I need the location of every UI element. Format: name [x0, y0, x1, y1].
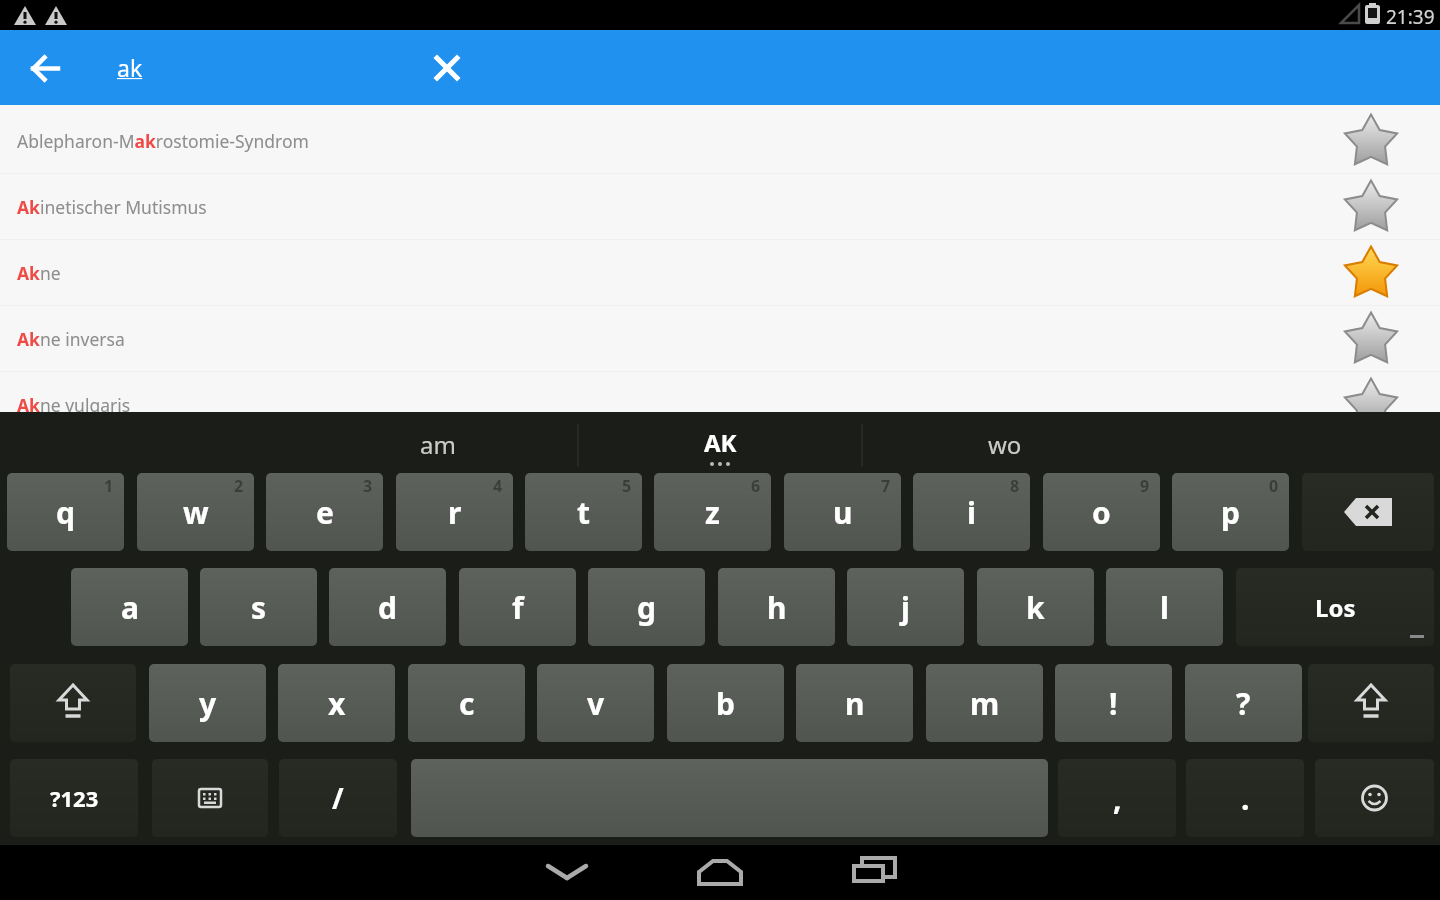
button[interactable]: k [977, 568, 1094, 646]
button[interactable]: Ablepharon-Makrostomie-Syndrom [0, 108, 1440, 174]
button[interactable] [1341, 243, 1401, 303]
staticText: q [56, 492, 75, 533]
staticText: i [967, 492, 976, 533]
staticText: e [316, 492, 334, 533]
staticText: Akne [17, 261, 61, 285]
staticText: v [587, 683, 605, 724]
button[interactable]: Akne inversa [0, 306, 1440, 372]
staticText: , [1113, 778, 1122, 819]
staticText: ? [1236, 683, 1251, 724]
button[interactable] [10, 664, 136, 742]
staticText: a [121, 587, 139, 628]
staticText: y [199, 683, 217, 724]
button[interactable]: z [654, 473, 771, 551]
button[interactable] [1341, 309, 1401, 369]
button[interactable]: AK [640, 420, 800, 470]
button[interactable] [1341, 375, 1401, 435]
button[interactable]: Akinetischer Mutismus [0, 174, 1440, 240]
staticText: h [767, 587, 787, 628]
button[interactable]: ?123 [10, 759, 138, 837]
button[interactable] [1341, 177, 1401, 237]
button[interactable]: Akne [0, 240, 1440, 306]
button[interactable] [527, 845, 607, 900]
button[interactable]: , [1058, 759, 1176, 837]
button[interactable]: n [796, 664, 913, 742]
staticText: Akne vulgaris [17, 393, 131, 417]
button[interactable]: Akne vulgaris [0, 372, 1440, 438]
staticText: n [845, 683, 865, 724]
button[interactable]: o [1043, 473, 1160, 551]
staticText: g [637, 587, 656, 628]
button[interactable] [1315, 759, 1434, 837]
button[interactable]: a [71, 568, 188, 646]
button[interactable]: r [396, 473, 513, 551]
button[interactable] [425, 46, 469, 90]
staticText: f [512, 587, 524, 628]
button[interactable]: Los [1236, 568, 1434, 646]
button[interactable] [1308, 664, 1434, 742]
button[interactable] [680, 845, 760, 900]
button[interactable]: f [459, 568, 576, 646]
button[interactable]: w [137, 473, 254, 551]
button[interactable]: i [913, 473, 1030, 551]
button[interactable]: t [525, 473, 642, 551]
button[interactable]: l [1106, 568, 1223, 646]
button[interactable]: x [278, 664, 395, 742]
staticText: . [1241, 778, 1250, 819]
staticText: u [833, 492, 853, 533]
button[interactable]: . [1186, 759, 1304, 837]
staticText: 9 [1140, 475, 1150, 497]
staticText: Ablepharon-Makrostomie-Syndrom [17, 129, 309, 153]
button[interactable] [152, 759, 268, 837]
button[interactable]: e [266, 473, 383, 551]
staticText: t [577, 492, 591, 533]
button[interactable]: y [149, 664, 266, 742]
staticText: 3 [363, 475, 373, 497]
button[interactable] [833, 845, 913, 900]
staticText: AK [704, 426, 737, 459]
staticText: j [901, 587, 910, 628]
button[interactable]: wo [988, 428, 1022, 461]
staticText: ! [1109, 683, 1118, 724]
button[interactable] [411, 759, 1048, 837]
staticText: 1 [104, 475, 114, 497]
button[interactable]: p [1172, 473, 1289, 551]
button[interactable] [22, 46, 68, 92]
staticText: 6 [751, 475, 761, 497]
button[interactable] [1302, 473, 1434, 551]
button[interactable]: d [329, 568, 446, 646]
staticText: l [1160, 587, 1169, 628]
staticText: b [716, 683, 735, 724]
staticText: x [328, 683, 346, 724]
staticText: m [970, 683, 1000, 724]
button[interactable] [1341, 111, 1401, 171]
button[interactable]: q [7, 473, 124, 551]
staticText: w [183, 492, 209, 533]
staticText: 7 [881, 475, 891, 497]
staticText: s [251, 587, 267, 628]
button[interactable]: c [408, 664, 525, 742]
staticText: / [332, 779, 344, 817]
button[interactable]: v [537, 664, 654, 742]
staticText: Akinetischer Mutismus [17, 195, 207, 219]
staticText: Akne inversa [17, 327, 125, 351]
button[interactable]: h [718, 568, 835, 646]
button[interactable]: ! [1055, 664, 1172, 742]
staticText: z [705, 492, 720, 533]
staticText: ak [117, 52, 143, 83]
button[interactable]: s [200, 568, 317, 646]
button[interactable]: g [588, 568, 705, 646]
staticText: p [1221, 492, 1240, 533]
button[interactable]: am [420, 428, 456, 461]
button[interactable]: m [926, 664, 1043, 742]
button[interactable]: u [784, 473, 901, 551]
staticText: ?123 [50, 783, 99, 813]
staticText: Los [1315, 591, 1356, 624]
staticText: 8 [1010, 475, 1020, 497]
button[interactable]: j [847, 568, 964, 646]
staticText: 2 [234, 475, 244, 497]
button[interactable]: / [279, 759, 397, 837]
button[interactable]: ? [1185, 664, 1302, 742]
button[interactable]: b [667, 664, 784, 742]
staticText: k [1026, 587, 1045, 628]
